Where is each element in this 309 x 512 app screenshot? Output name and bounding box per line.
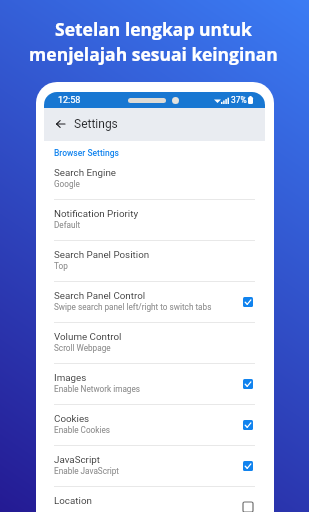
staticText: Enable JavaScript <box>54 466 120 476</box>
staticText: Swipe search panel left/right to switch … <box>54 302 212 312</box>
staticText: Top <box>54 261 68 271</box>
button[interactable]: Back <box>51 115 69 133</box>
button[interactable]: Search Panel Position <box>44 241 265 282</box>
staticText: JavaScript <box>54 454 101 465</box>
button[interactable]: Enabled <box>243 379 253 389</box>
staticText: Settings <box>74 117 118 131</box>
button[interactable]: Search Engine <box>44 159 265 200</box>
button[interactable]: Disabled <box>243 502 253 512</box>
staticText: 37% <box>231 95 247 105</box>
button[interactable]: Enabled <box>243 420 253 430</box>
staticText: Search Panel Position <box>54 249 150 260</box>
button[interactable]: Cookies <box>44 405 265 446</box>
staticText: Notification Priority <box>54 208 139 219</box>
button[interactable]: Location <box>44 487 265 512</box>
staticText: Enable Network images <box>54 384 141 394</box>
staticText: Google <box>54 179 80 189</box>
staticText: Setelan lengkap untuk menjelajah sesuai … <box>29 17 278 66</box>
button[interactable]: Search Panel Control <box>44 282 265 323</box>
staticText: Images <box>54 372 87 383</box>
staticText: Volume Control <box>54 331 122 342</box>
button[interactable]: Images <box>44 364 265 405</box>
staticText: Scroll Webpage <box>54 343 111 353</box>
button[interactable]: Enabled <box>243 297 253 307</box>
staticText: Search Engine <box>54 167 116 178</box>
staticText: Enable Cookies <box>54 425 110 435</box>
button[interactable]: JavaScript <box>44 446 265 487</box>
staticText: Cookies <box>54 413 90 424</box>
staticText: Location <box>54 495 92 506</box>
button[interactable]: Notification Priority <box>44 200 265 241</box>
staticText: 12:58 <box>58 95 81 106</box>
button[interactable]: Enabled <box>243 461 253 471</box>
staticText: Search Panel Control <box>54 290 146 301</box>
staticText: Default <box>54 220 81 230</box>
button[interactable]: Volume Control <box>44 323 265 364</box>
staticText: Browser Settings <box>54 148 119 158</box>
